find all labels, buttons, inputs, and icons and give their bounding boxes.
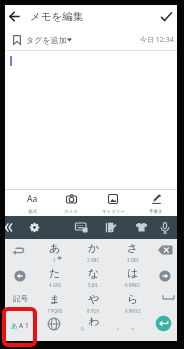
button[interactable] xyxy=(155,315,172,332)
staticText: 5 JKL xyxy=(88,282,99,288)
button[interactable]: 、 xyxy=(113,314,152,337)
staticText: 1 xyxy=(53,257,56,263)
staticText: カメラ xyxy=(64,209,78,215)
button[interactable] xyxy=(158,269,172,283)
staticText: あ xyxy=(11,322,18,330)
button[interactable] xyxy=(11,245,26,256)
button[interactable]: あ xyxy=(5,314,35,337)
button[interactable] xyxy=(5,223,14,232)
staticText: 8 TUV xyxy=(87,308,100,314)
button[interactable]: は xyxy=(113,265,152,288)
staticText: さ xyxy=(127,241,139,255)
staticText: 形式 xyxy=(28,209,37,215)
staticText: 、 xyxy=(116,321,124,331)
button[interactable]: や xyxy=(74,291,113,314)
button[interactable] xyxy=(75,222,88,233)
button[interactable] xyxy=(135,222,148,233)
staticText: 。 xyxy=(131,321,139,331)
button[interactable] xyxy=(105,222,117,233)
button[interactable] xyxy=(47,317,61,331)
button[interactable]: 記号 xyxy=(5,287,35,310)
staticText: 9 WXYZ xyxy=(125,308,141,314)
staticText: 7 PQRS xyxy=(47,308,63,314)
staticText: ら xyxy=(127,292,139,306)
staticText: 手書き xyxy=(149,209,163,215)
staticText: メモを編集 xyxy=(30,10,84,23)
staticText: ギャラリー xyxy=(102,209,125,215)
staticText: ま xyxy=(49,292,61,306)
staticText: 0 xyxy=(81,326,84,332)
button[interactable]: ギャラリー xyxy=(94,191,132,216)
button[interactable] xyxy=(160,11,173,22)
button[interactable] xyxy=(160,222,170,234)
button[interactable]: わ xyxy=(74,313,113,336)
button[interactable]: 手書き xyxy=(137,191,175,216)
staticText: あ xyxy=(49,241,61,255)
staticText: わ xyxy=(88,314,100,328)
staticText: た xyxy=(49,266,61,280)
button[interactable]: ら xyxy=(113,291,152,314)
staticText: A xyxy=(19,321,24,330)
staticText: や xyxy=(88,292,100,306)
button[interactable]: さ xyxy=(113,240,152,263)
button[interactable] xyxy=(157,244,173,256)
button[interactable]: か xyxy=(74,240,113,263)
button[interactable]: Aa xyxy=(13,191,51,216)
staticText: Aa xyxy=(27,193,38,205)
button[interactable]: メモを編集 xyxy=(30,8,110,24)
staticText: 1 xyxy=(25,321,29,330)
staticText: タグを追加 xyxy=(26,35,67,45)
button[interactable] xyxy=(13,269,27,283)
staticText: 今日 12:34 xyxy=(140,35,174,45)
staticText: か xyxy=(88,241,100,255)
staticText: 3 DEF xyxy=(127,257,139,263)
button[interactable]: カメラ xyxy=(52,191,90,216)
button[interactable]: な xyxy=(74,265,113,288)
staticText: 記号 xyxy=(13,294,28,303)
button[interactable] xyxy=(162,293,175,301)
button[interactable] xyxy=(29,222,40,233)
button[interactable]: ま xyxy=(35,291,74,314)
button[interactable]: タグを追加 xyxy=(5,30,115,50)
staticText: 6 MNO xyxy=(125,282,140,288)
staticText: は xyxy=(127,266,139,280)
staticText: 2 ABC xyxy=(87,257,100,263)
button[interactable]: た xyxy=(35,265,74,288)
staticText: な xyxy=(88,266,100,280)
staticText: 4 GHI xyxy=(49,282,61,288)
button[interactable]: あ xyxy=(35,240,74,263)
button[interactable] xyxy=(9,11,20,22)
